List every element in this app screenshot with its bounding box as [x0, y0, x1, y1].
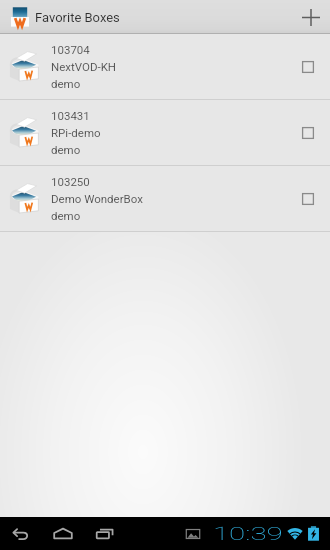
- button[interactable]: 103431 RPi-demo demo: [0, 100, 330, 165]
- staticText: 10:39: [213, 522, 283, 544]
- button[interactable]: Select NextVOD-KH: [293, 52, 323, 82]
- button[interactable]: 103704 NextVOD-KH demo: [0, 34, 330, 99]
- button[interactable]: Add: [292, 1, 329, 34]
- staticText: 103704 NextVOD-KH demo: [51, 41, 117, 92]
- staticText: 103431 RPi-demo demo: [51, 107, 101, 158]
- staticText: 103250 Demo WonderBox demo: [51, 173, 143, 224]
- staticText: Favorite Boxes: [35, 10, 120, 25]
- button[interactable]: 103250 Demo WonderBox demo: [0, 166, 330, 231]
- button[interactable]: Select Demo WonderBox: [293, 184, 323, 214]
- button[interactable]: Select RPi-demo: [293, 118, 323, 148]
- button[interactable]: Recent apps: [88, 517, 121, 550]
- button[interactable]: Home: [46, 517, 79, 550]
- button[interactable]: Back: [4, 517, 37, 550]
